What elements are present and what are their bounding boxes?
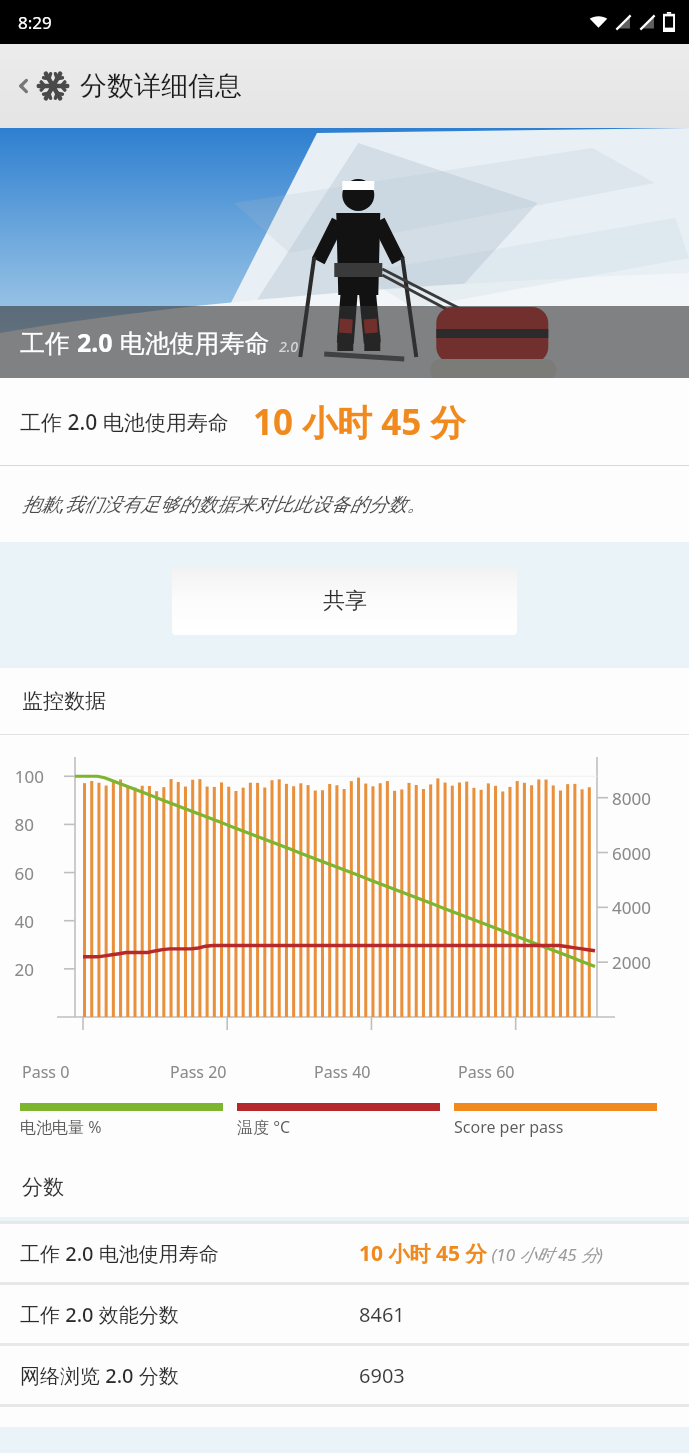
staticText: 10 小时 45 分 [359, 1239, 487, 1268]
staticText: 6903 [359, 1362, 405, 1389]
staticText: (10 小时 45 分) [487, 1243, 604, 1266]
staticText: 8:29 [18, 11, 52, 34]
staticText: 6000 [612, 842, 651, 865]
staticText: 分数详细信息 [80, 69, 242, 103]
button[interactable]: Back [0, 44, 689, 128]
staticText: 2000 [612, 951, 651, 974]
button[interactable]: 共享 [172, 567, 517, 635]
staticText: 监控数据 [22, 688, 106, 714]
staticText: 抱歉,我们没有足够的数据来对比此设备的分数。 [22, 491, 426, 517]
staticText: 工作 2.0 效能分数 [20, 1301, 179, 1328]
staticText: 100 [14, 765, 44, 788]
staticText: Score per pass [454, 1116, 564, 1138]
staticText: 工作 [20, 325, 77, 359]
staticText: 80 [14, 813, 34, 836]
button[interactable]: 工作 2.0 效能分数 [0, 1285, 689, 1343]
staticText: 共享 [323, 587, 367, 615]
staticText: 网络浏览 2.0 分数 [20, 1362, 179, 1389]
other: Back [14, 76, 34, 96]
staticText: 10 小时 45 分 [253, 398, 466, 446]
staticText: 分数 [22, 1174, 64, 1200]
staticText: 60 [14, 862, 34, 885]
staticText: 4000 [612, 896, 651, 919]
staticText: Pass 0 [22, 1061, 70, 1083]
staticText: 8461 [359, 1301, 405, 1328]
staticText: 电池电量 % [20, 1116, 102, 1138]
staticText: 电池使用寿命 [113, 325, 270, 359]
staticText: 40 [14, 910, 34, 933]
staticText: 20 [14, 958, 34, 981]
staticText: 2.0 [77, 325, 113, 359]
staticText: 工作 2.0 电池使用寿命 [20, 1240, 219, 1267]
staticText: Pass 40 [314, 1061, 371, 1083]
staticText: 8000 [612, 787, 651, 810]
staticText: 工作 2.0 电池使用寿命 [20, 408, 229, 437]
staticText: 温度 °C [237, 1116, 291, 1138]
staticText: Pass 60 [458, 1061, 515, 1083]
button[interactable]: 工作 2.0 电池使用寿命 [0, 1224, 689, 1282]
staticText: Pass 20 [170, 1061, 227, 1083]
staticText: 2.0 [279, 337, 299, 356]
button[interactable]: 网络浏览 2.0 分数 [0, 1346, 689, 1404]
